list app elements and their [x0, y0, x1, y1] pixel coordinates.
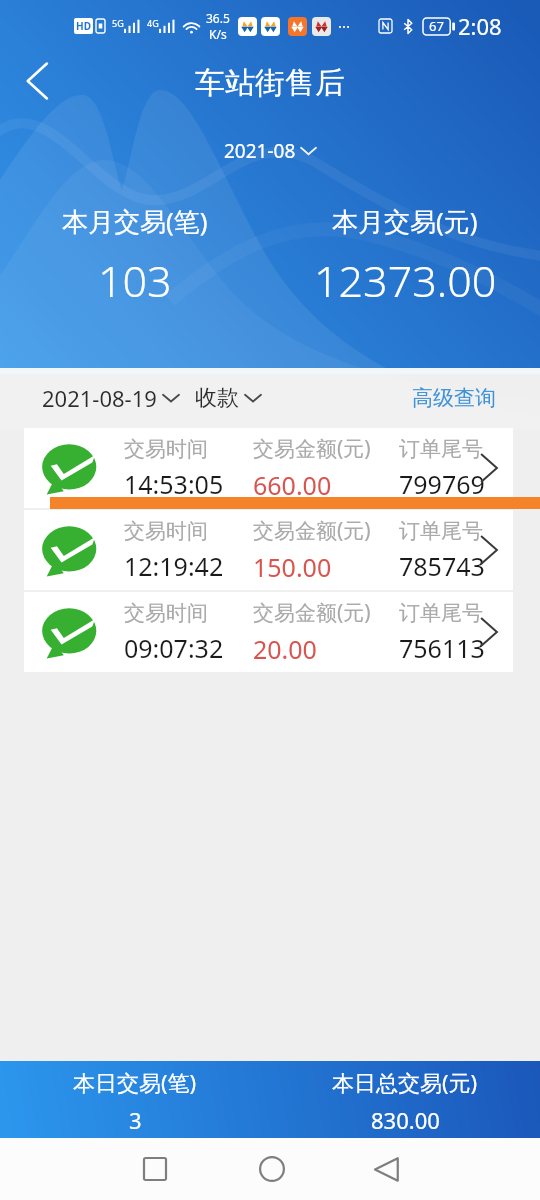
- button[interactable]: 交易时间: [24, 428, 513, 508]
- button[interactable]: 收款: [195, 376, 261, 420]
- staticText: 本月交易(元): [332, 203, 478, 239]
- button[interactable]: 交易时间: [24, 592, 513, 672]
- staticText: 交易金额(元): [253, 434, 371, 463]
- staticText: 14:53:05: [124, 467, 224, 501]
- button[interactable]: 2021-08: [220, 136, 320, 166]
- staticText: 交易时间: [124, 436, 208, 462]
- staticText: 交易金额(元): [253, 598, 371, 627]
- staticText: 12:19:42: [124, 549, 224, 583]
- staticText: 785743: [399, 549, 485, 583]
- staticText: 本日总交易(元): [332, 1067, 478, 1097]
- staticText: 2021-08-19: [42, 383, 157, 413]
- staticText: 67: [429, 17, 444, 35]
- staticText: 本日交易(笔): [73, 1067, 197, 1097]
- staticText: 订单尾号: [399, 436, 483, 462]
- staticText: K/s: [209, 26, 227, 42]
- staticText: 5G: [112, 17, 124, 29]
- staticText: 103: [98, 251, 172, 310]
- staticText: 订单尾号: [399, 600, 483, 626]
- staticText: 36.5: [206, 10, 230, 26]
- staticText: 660.00: [253, 468, 332, 502]
- staticText: 4G: [147, 17, 159, 29]
- staticText: 本月交易(笔): [62, 203, 208, 239]
- staticText: 收款: [195, 384, 239, 412]
- button[interactable]: 2021-08-19: [42, 375, 179, 421]
- staticText: 3: [129, 1105, 142, 1135]
- staticText: 交易时间: [124, 518, 208, 544]
- staticText: 756113: [399, 631, 485, 665]
- button[interactable]: 高级查询: [412, 377, 496, 419]
- staticText: 799769: [399, 467, 485, 501]
- staticText: ···: [338, 16, 351, 36]
- button[interactable]: Back: [356, 1139, 416, 1199]
- button[interactable]: Home: [242, 1139, 302, 1199]
- staticText: 交易时间: [124, 600, 208, 626]
- staticText: 20.00: [253, 632, 317, 666]
- staticText: 09:07:32: [124, 631, 224, 665]
- staticText: 交易金额(元): [253, 516, 371, 545]
- staticText: 12373.00: [314, 251, 497, 310]
- staticText: 车站街售后: [195, 64, 345, 102]
- staticText: HD: [76, 19, 91, 33]
- staticText: 2:08: [458, 11, 502, 41]
- staticText: 2021-08: [224, 138, 296, 164]
- staticText: 150.00: [253, 550, 332, 584]
- button[interactable]: 交易时间: [24, 510, 513, 590]
- staticText: 830.00: [371, 1105, 440, 1135]
- button[interactable]: Recent apps: [125, 1139, 185, 1199]
- staticText: 订单尾号: [399, 518, 483, 544]
- button[interactable]: Back: [14, 58, 60, 104]
